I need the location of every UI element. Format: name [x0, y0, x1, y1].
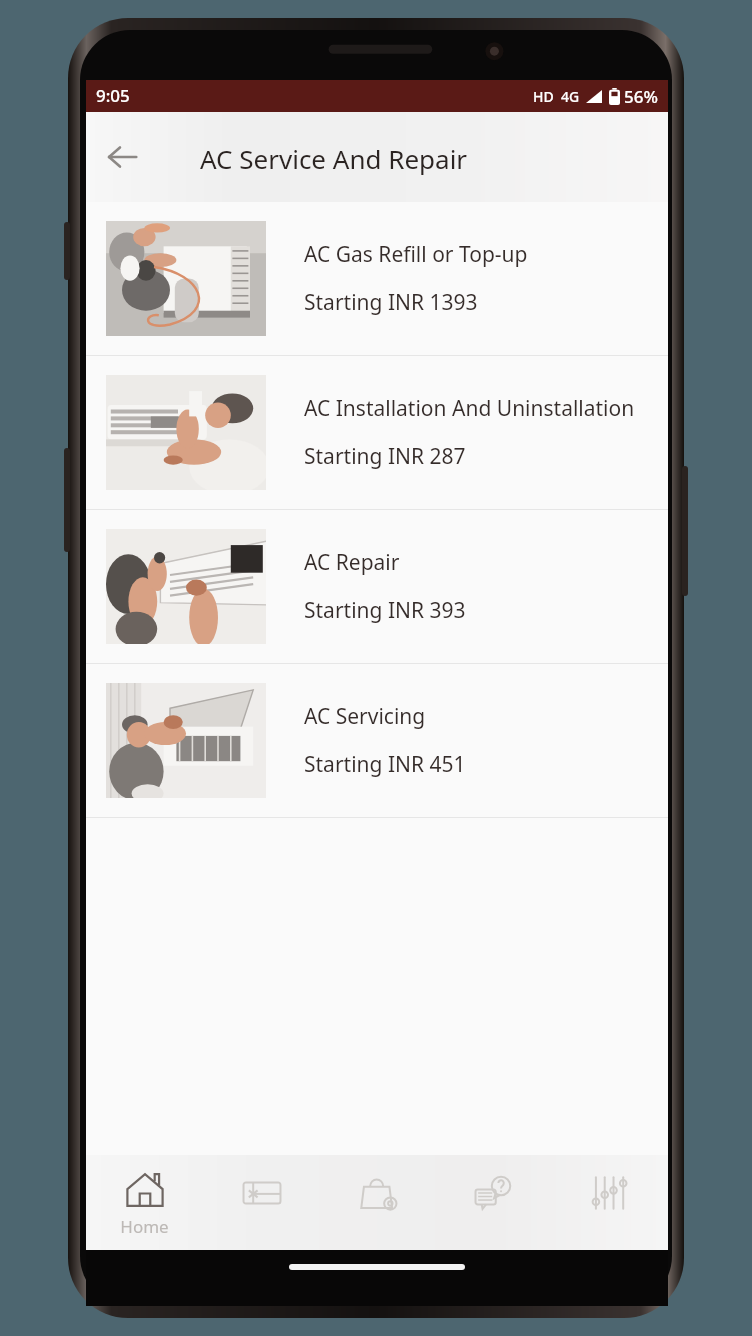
staticText: 4G — [561, 87, 580, 106]
staticText: AC Installation And Uninstallation — [304, 394, 635, 423]
staticText: AC Gas Refill or Top-up — [304, 240, 528, 269]
staticText: 9:05 — [96, 84, 130, 107]
button[interactable]: AC Installation And Uninstallation — [86, 356, 668, 509]
staticText: Starting INR 287 — [304, 442, 466, 471]
button[interactable]: Back — [94, 129, 150, 185]
staticText: Home — [120, 1215, 169, 1238]
staticText: Starting INR 393 — [304, 596, 466, 625]
button[interactable]: Coupons — [203, 1155, 320, 1250]
staticText: AC Service And Repair — [200, 141, 468, 176]
staticText: Starting INR 1393 — [304, 288, 478, 317]
button[interactable]: AC Repair — [86, 510, 668, 663]
staticText: AC Servicing — [304, 702, 426, 731]
button[interactable]: AC Servicing — [86, 664, 668, 817]
button[interactable]: Support — [436, 1155, 552, 1250]
staticText: Starting INR 451 — [304, 750, 466, 779]
staticText: AC Repair — [304, 548, 400, 577]
button[interactable]: AC Gas Refill or Top-up — [86, 202, 668, 355]
staticText: 56% — [624, 85, 658, 108]
button[interactable]: Orders — [320, 1155, 436, 1250]
button[interactable]: Settings — [552, 1155, 668, 1250]
staticText: HD — [533, 87, 554, 106]
button[interactable]: Home — [86, 1155, 203, 1250]
